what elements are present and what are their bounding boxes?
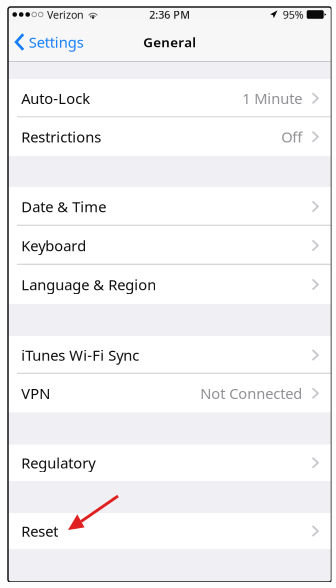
staticText: Settings (29, 32, 84, 52)
staticText: Regulatory (21, 453, 95, 472)
staticText: VPN (21, 383, 50, 403)
button[interactable]: VPN (8, 374, 331, 412)
staticText: Restrictions (21, 127, 101, 146)
button[interactable]: Auto-Lock (8, 79, 331, 117)
staticText: General (143, 33, 196, 51)
staticText: Reset (21, 521, 58, 541)
button[interactable]: Language & Region (8, 265, 331, 304)
staticText: Language & Region (21, 275, 156, 294)
button[interactable]: iTunes Wi-Fi Sync (8, 336, 331, 374)
staticText: Not Connected (200, 383, 302, 403)
staticText: Off (281, 127, 302, 146)
staticText: Auto-Lock (21, 88, 90, 108)
staticText: 95% (283, 7, 304, 22)
staticText: 1 Minute (242, 88, 302, 108)
button[interactable]: Reset (8, 513, 331, 549)
button[interactable]: Restrictions (8, 117, 331, 156)
button[interactable]: Keyboard (8, 226, 331, 265)
button[interactable]: Date & Time (8, 187, 331, 226)
staticText: 2:36 PM (149, 7, 190, 22)
button[interactable]: Settings (8, 27, 84, 57)
staticText: Verizon (47, 7, 84, 22)
button[interactable]: Regulatory (8, 444, 331, 481)
staticText: Date & Time (21, 197, 106, 216)
staticText: Keyboard (21, 236, 86, 255)
staticText: iTunes Wi-Fi Sync (21, 345, 139, 365)
